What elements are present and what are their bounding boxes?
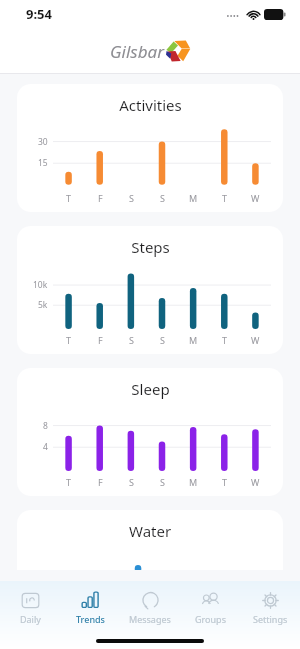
staticText: T xyxy=(222,192,228,204)
staticText: 8 xyxy=(43,420,48,432)
staticText: W xyxy=(251,334,260,346)
button[interactable]: Water xyxy=(17,510,283,570)
staticText: S xyxy=(160,476,165,488)
staticText: Daily xyxy=(20,613,41,625)
staticText: M xyxy=(189,192,198,204)
staticText: T xyxy=(66,334,72,346)
staticText: T xyxy=(222,476,228,488)
staticText: 4 xyxy=(43,441,48,453)
staticText: W xyxy=(251,476,260,488)
button[interactable]: Settings xyxy=(240,589,300,627)
staticText: F xyxy=(98,476,103,488)
staticText: Gilsbar xyxy=(110,40,164,63)
staticText: Water xyxy=(129,521,172,541)
button[interactable]: Activities xyxy=(17,84,283,212)
staticText: S xyxy=(160,192,165,204)
staticText: Steps xyxy=(131,237,170,257)
button[interactable]: Messages xyxy=(120,589,180,627)
staticText: 30 xyxy=(38,136,48,148)
button[interactable]: Trends xyxy=(60,589,120,627)
staticText: T xyxy=(66,476,72,488)
button[interactable]: Steps xyxy=(17,226,283,354)
staticText: M xyxy=(189,334,198,346)
staticText: S xyxy=(129,476,134,488)
staticText: S xyxy=(129,334,134,346)
button[interactable]: Groups xyxy=(180,589,240,627)
staticText: Activities xyxy=(119,95,182,115)
button[interactable]: Sleep xyxy=(17,368,283,496)
staticText: W xyxy=(251,192,260,204)
staticText: 9:54 xyxy=(26,5,52,23)
staticText: F xyxy=(98,192,103,204)
staticText: 15 xyxy=(38,157,48,169)
staticText: Groups xyxy=(195,613,226,625)
staticText: Sleep xyxy=(131,379,170,399)
staticText: T xyxy=(66,192,72,204)
staticText: 5k xyxy=(38,299,48,311)
staticText: S xyxy=(160,334,165,346)
staticText: Trends xyxy=(76,613,105,625)
staticText: T xyxy=(222,334,228,346)
staticText: F xyxy=(98,334,103,346)
staticText: 10k xyxy=(33,279,48,291)
staticText: M xyxy=(189,476,198,488)
staticText: S xyxy=(129,192,134,204)
button[interactable]: Daily xyxy=(0,589,60,627)
staticText: Settings xyxy=(253,613,288,625)
staticText: Messages xyxy=(129,613,171,625)
